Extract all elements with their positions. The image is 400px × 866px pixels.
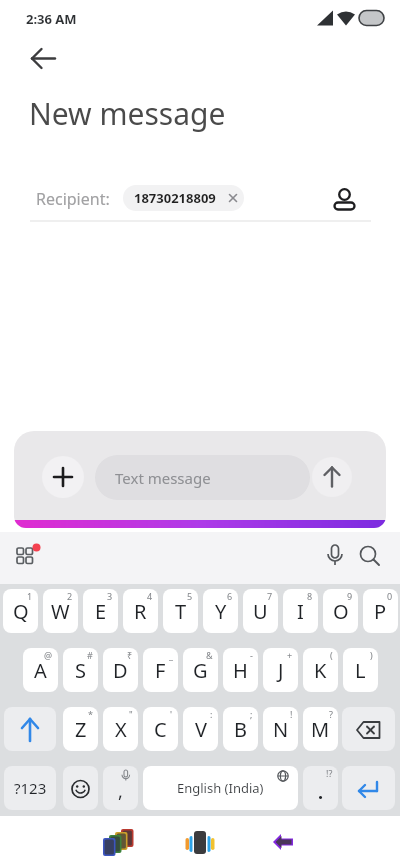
staticText: 9 (347, 590, 353, 602)
staticText: 2 (67, 590, 73, 602)
staticText: Y (215, 598, 227, 625)
staticText: E (95, 598, 107, 625)
staticText: M (311, 716, 330, 743)
staticText: Z (75, 716, 87, 743)
staticText: Recipient: (36, 188, 110, 210)
staticText: 8 (307, 590, 313, 602)
button[interactable]: I (283, 589, 318, 633)
button[interactable] (42, 456, 84, 498)
button[interactable]: T (163, 589, 198, 633)
button[interactable] (320, 540, 350, 574)
staticText: ? (329, 708, 333, 720)
staticText: ; (250, 708, 253, 720)
staticText: # (87, 649, 93, 661)
staticText: X (115, 716, 127, 743)
staticText: G (193, 657, 208, 684)
staticText: P (374, 598, 387, 625)
staticText: ?123 (14, 778, 47, 798)
button[interactable]: B (223, 707, 258, 751)
staticText: 1 (27, 590, 33, 602)
button[interactable]: Q (3, 589, 38, 633)
staticText: ( (330, 649, 333, 661)
button[interactable]: Z (63, 707, 98, 751)
button[interactable]: Text message (95, 455, 310, 500)
button[interactable] (63, 766, 98, 810)
staticText: L (355, 657, 366, 684)
staticText: English (India) (177, 779, 264, 797)
button[interactable]: !? (303, 766, 338, 810)
staticText: 2:36 AM (26, 10, 77, 28)
staticText: O (333, 598, 349, 625)
staticText: W (51, 598, 70, 625)
staticText: V (195, 716, 207, 743)
button[interactable]: M (303, 707, 338, 751)
button[interactable]: N (263, 707, 298, 751)
button[interactable]: E (83, 589, 118, 633)
staticText: 4 (147, 590, 153, 602)
button[interactable]: X (103, 707, 138, 751)
button[interactable]: ?123 (4, 766, 56, 810)
button[interactable]: S (63, 648, 98, 692)
staticText: 6 (227, 590, 233, 602)
staticText: ) (370, 649, 373, 661)
staticText: C (154, 716, 167, 743)
button[interactable] (4, 707, 56, 751)
staticText: !? (326, 767, 333, 779)
staticText: N (273, 716, 289, 743)
button[interactable]: , (103, 766, 138, 810)
staticText: F (155, 657, 166, 684)
button[interactable]: 18730218809 (123, 185, 244, 211)
button[interactable]: C (143, 707, 178, 751)
button[interactable] (265, 822, 305, 862)
button[interactable]: H (223, 648, 258, 692)
staticText: * (88, 708, 93, 720)
button[interactable]: G (183, 648, 218, 692)
button[interactable]: L (343, 648, 378, 692)
button[interactable]: W (43, 589, 78, 633)
staticText: @ (44, 649, 53, 661)
staticText: J (278, 657, 284, 684)
button[interactable]: P (363, 589, 398, 633)
staticText: H (233, 657, 248, 684)
button[interactable] (342, 766, 395, 810)
button[interactable] (330, 182, 360, 214)
button[interactable] (342, 707, 395, 751)
staticText: 18730218809 (134, 189, 216, 207)
staticText: New message (29, 93, 226, 134)
button[interactable] (20, 46, 68, 72)
button[interactable]: O (323, 589, 358, 633)
button[interactable] (180, 822, 220, 862)
staticText: ₹ (127, 649, 133, 661)
button[interactable]: Y (203, 589, 238, 633)
button[interactable]: K (303, 648, 338, 692)
staticText: 7 (267, 590, 273, 602)
staticText: Q (13, 598, 29, 625)
button[interactable]: A (23, 648, 58, 692)
button[interactable] (10, 540, 46, 574)
button[interactable]: J (263, 648, 298, 692)
button[interactable]: U (243, 589, 278, 633)
staticText: + (287, 649, 293, 661)
staticText: R (134, 598, 147, 625)
staticText: : (210, 708, 213, 720)
staticText: S (75, 657, 86, 684)
staticText: 3 (107, 590, 113, 602)
staticText: K (314, 657, 327, 684)
staticText: - (250, 649, 253, 661)
button[interactable]: R (123, 589, 158, 633)
staticText: ! (290, 708, 293, 720)
staticText: , (118, 779, 123, 804)
button[interactable]: D (103, 648, 138, 692)
button[interactable] (95, 822, 139, 862)
staticText: A (34, 657, 47, 684)
button[interactable]: V (183, 707, 218, 751)
button[interactable]: English (India) (143, 766, 298, 810)
button[interactable]: F (143, 648, 178, 692)
button[interactable] (312, 457, 352, 497)
staticText: Text message (115, 468, 211, 488)
button[interactable] (355, 540, 387, 574)
staticText: T (175, 598, 187, 625)
staticText: U (253, 598, 268, 625)
staticText: ' (170, 708, 173, 720)
staticText: " (129, 708, 133, 720)
